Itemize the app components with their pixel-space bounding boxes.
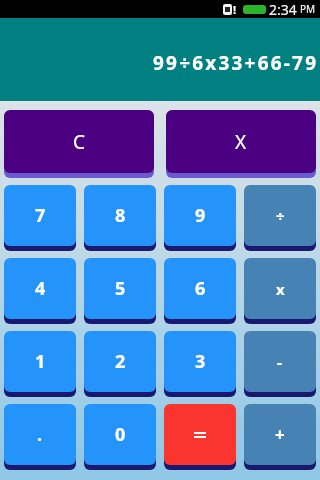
button[interactable]: 4 [4, 258, 76, 319]
button[interactable]: - [244, 331, 316, 392]
button[interactable]: 9 [164, 185, 236, 246]
staticText: . [37, 422, 43, 447]
staticText: C [73, 129, 86, 155]
button[interactable]: 2 [84, 331, 156, 392]
staticText: 6 [195, 276, 206, 301]
button[interactable] [164, 404, 236, 465]
staticText: 5 [115, 276, 126, 301]
staticText: - [277, 351, 283, 373]
button[interactable]: X [166, 110, 316, 173]
button[interactable]: C [4, 110, 154, 173]
button[interactable]: x [244, 258, 316, 319]
button[interactable]: 1 [4, 331, 76, 392]
button[interactable]: 7 [4, 185, 76, 246]
staticText: x [276, 279, 285, 299]
staticText: 99÷6x33+66-79 [153, 50, 319, 76]
staticText: 0 [115, 422, 126, 447]
staticText: 8 [115, 203, 126, 228]
staticText: PM [300, 2, 316, 16]
button[interactable]: 5 [84, 258, 156, 319]
staticText: ! [233, 2, 237, 17]
staticText: + [275, 423, 285, 446]
button[interactable]: ÷ [244, 185, 316, 246]
staticText: 9 [195, 203, 206, 228]
button[interactable]: 0 [84, 404, 156, 465]
staticText: X [235, 129, 247, 155]
staticText: 1 [35, 349, 46, 374]
staticText: ÷ [276, 206, 285, 226]
button[interactable]: 3 [164, 331, 236, 392]
staticText: 2 [115, 349, 126, 374]
button[interactable]: . [4, 404, 76, 465]
staticText: 3 [195, 349, 206, 374]
button[interactable]: 8 [84, 185, 156, 246]
staticText: 2:34 [269, 0, 297, 18]
button[interactable]: 6 [164, 258, 236, 319]
staticText: 4 [35, 276, 46, 301]
staticText: 7 [35, 203, 46, 228]
button[interactable]: + [244, 404, 316, 465]
